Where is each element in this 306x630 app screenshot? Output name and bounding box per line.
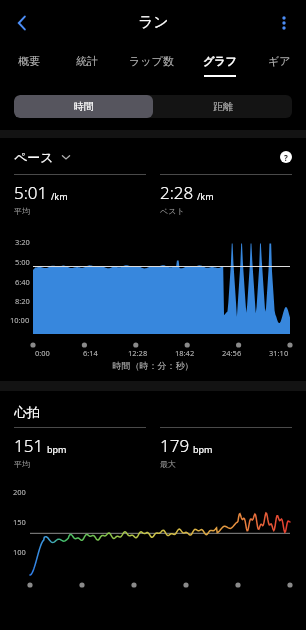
staticText: 151 [14,434,44,457]
staticText: 心拍 [14,404,40,420]
staticText: 最大 [160,459,176,469]
staticText: 150 [13,517,26,527]
staticText: bpm [193,443,213,455]
staticText: 時間 [74,100,94,113]
button[interactable]: ラップ数 [115,45,188,85]
staticText: ? [284,152,288,163]
button[interactable]: グラフ [188,45,252,85]
staticText: ラン [138,13,169,32]
staticText: /km [51,190,68,202]
button[interactable]: 概要 [0,45,58,85]
staticText: 5:01 [14,181,48,204]
staticText: 統計 [76,54,98,68]
staticText: 12:28 [128,348,148,358]
staticText: 距離 [213,100,233,113]
staticText: 5:00 [15,257,30,267]
button[interactable]: Expand [60,151,72,163]
staticText: 24:56 [222,348,242,358]
staticText: ラップ数 [129,54,174,68]
staticText: bpm [47,443,67,455]
staticText: 6:40 [15,277,30,287]
staticText: 10:00 [10,315,30,325]
staticText: 0:00 [35,348,50,358]
staticText: グラフ [203,54,237,68]
button[interactable]: More options [266,5,302,41]
staticText: 3:20 [15,237,30,247]
staticText: /km [197,190,214,202]
staticText: 2:28 [160,181,194,204]
staticText: 概要 [18,54,40,68]
staticText: 時間（時：分：秒） [0,360,306,371]
button[interactable]: Help [278,149,294,165]
staticText: 31:10 [269,348,289,358]
button[interactable]: 統計 [58,45,115,85]
button[interactable]: Back [4,5,40,41]
staticText: 8:20 [15,296,30,306]
staticText: ペース [14,149,54,165]
button[interactable]: 距離 [153,95,292,118]
staticText: 6:14 [83,348,98,358]
staticText: 200 [13,487,26,497]
staticText: 100 [13,547,26,557]
button[interactable]: ギア [252,45,306,85]
staticText: 18:42 [175,348,195,358]
staticText: ギア [268,54,291,68]
button[interactable]: 時間 [14,95,153,118]
staticText: 平均 [14,206,30,216]
staticText: 179 [160,434,190,457]
staticText: 平均 [14,459,30,469]
staticText: ベスト [160,206,185,216]
